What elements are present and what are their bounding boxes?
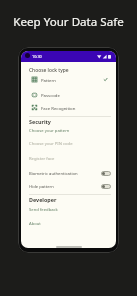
button[interactable]: Hide pattern (21, 181, 116, 192)
staticText: Face Recognition (41, 105, 76, 111)
button[interactable]: Face Recognition (21, 101, 116, 114)
staticText: Choose lock type (29, 67, 69, 74)
staticText: Register face (29, 156, 55, 162)
button[interactable]: Biometric authentication (21, 168, 116, 179)
button[interactable]: About (21, 218, 116, 229)
button[interactable]: Register face (21, 153, 116, 164)
staticText: Pattern (41, 77, 56, 83)
staticText: Biometric authentication (29, 171, 78, 177)
button[interactable]: Passcode (21, 88, 116, 101)
staticText: Passcode (41, 92, 60, 98)
button[interactable]: Pattern (21, 73, 116, 86)
staticText: Hide pattern (29, 184, 54, 190)
button[interactable]: Send feedback (21, 204, 116, 215)
staticText: About (29, 221, 41, 227)
staticText: 10:30 (32, 54, 42, 59)
button[interactable]: Choose your PIN code (21, 138, 116, 149)
button[interactable]: Choose your pattern (21, 125, 116, 136)
staticText: Choose your PIN code (29, 141, 73, 147)
staticText: Keep Your Data Safe (0, 14, 137, 30)
staticText: Choose your pattern (29, 128, 70, 134)
staticText: Send feedback (29, 207, 58, 213)
staticText: Developer (29, 196, 57, 203)
staticText: Security (29, 118, 51, 125)
